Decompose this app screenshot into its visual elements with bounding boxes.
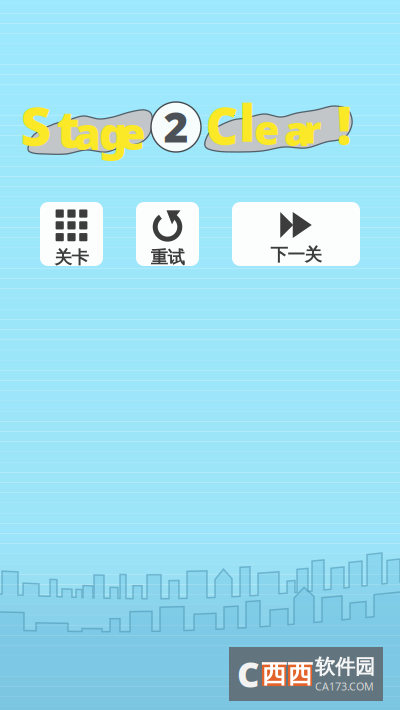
staticText: e [254,102,280,156]
staticText: a [284,103,310,157]
staticText: C [237,651,259,697]
button[interactable]: 重试 [136,202,199,266]
staticText: g [99,104,127,162]
button[interactable]: 下一关 [232,202,360,266]
staticText: 关卡 [54,247,88,268]
button[interactable]: 关卡 [40,202,103,266]
staticText: e [118,104,145,162]
staticText: 软件园 [315,655,375,679]
staticText: a [73,104,100,162]
staticText: 下一关 [270,244,321,265]
staticText: t [56,94,79,162]
staticText: CA173.COM [315,679,374,693]
staticText: r [304,104,322,154]
staticText: C [205,91,238,159]
staticText: 重试 [150,247,184,268]
staticText: l [239,88,255,156]
staticText: 西 [261,658,286,689]
staticText: ! [336,89,351,159]
staticText: S [20,90,51,160]
staticText: 2 [163,98,188,154]
staticText: 西 [287,658,312,689]
